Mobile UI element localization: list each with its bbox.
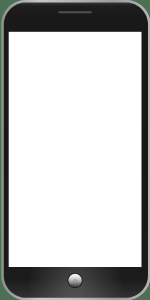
button[interactable]: Smartphone	[0, 0, 150, 300]
